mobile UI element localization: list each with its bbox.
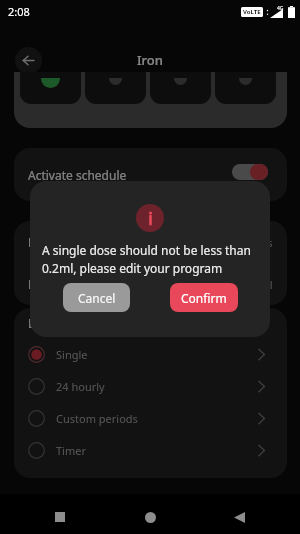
button[interactable]: Custom periods bbox=[14, 402, 287, 434]
button[interactable]: Back bbox=[221, 499, 257, 534]
staticText: Custom periods bbox=[56, 411, 138, 426]
button[interactable]: Dose bbox=[14, 221, 287, 263]
button[interactable]: Confirm bbox=[170, 283, 238, 312]
button[interactable]: Back bbox=[15, 47, 42, 74]
staticText: Dose bbox=[28, 234, 57, 250]
staticText: Dose frequency bbox=[28, 315, 117, 331]
staticText: 4G bbox=[277, 5, 284, 12]
staticText: Timer bbox=[56, 443, 86, 458]
staticText: Dose amount bbox=[28, 276, 105, 292]
staticText: Single bbox=[56, 347, 88, 362]
button[interactable]: Cancel bbox=[63, 283, 130, 312]
button[interactable] bbox=[85, 72, 146, 104]
button[interactable]: Timer bbox=[14, 434, 287, 466]
staticText: Confirm bbox=[181, 290, 227, 306]
button[interactable]: 24 hourly bbox=[14, 370, 287, 402]
staticText: Every 24 hours bbox=[196, 235, 273, 250]
button[interactable]: Activate schedule bbox=[14, 148, 287, 201]
staticText: VoLTE bbox=[243, 8, 261, 16]
staticText: Iron bbox=[137, 51, 163, 69]
staticText: Activate schedule bbox=[28, 167, 127, 183]
button[interactable]: Home bbox=[132, 499, 168, 534]
staticText: 2:08 bbox=[8, 4, 30, 19]
staticText: Cancel bbox=[78, 290, 116, 306]
button[interactable] bbox=[20, 72, 81, 104]
button[interactable] bbox=[150, 72, 211, 104]
button[interactable]: Dose amount bbox=[14, 263, 287, 305]
staticText: 0.1 ml bbox=[241, 277, 273, 292]
button[interactable] bbox=[215, 72, 276, 104]
staticText: A single dose should not be less than 0.… bbox=[42, 242, 258, 277]
button[interactable]: Single bbox=[14, 338, 287, 370]
staticText: 24 hourly bbox=[56, 379, 105, 394]
button[interactable]: Recent apps bbox=[42, 499, 78, 534]
